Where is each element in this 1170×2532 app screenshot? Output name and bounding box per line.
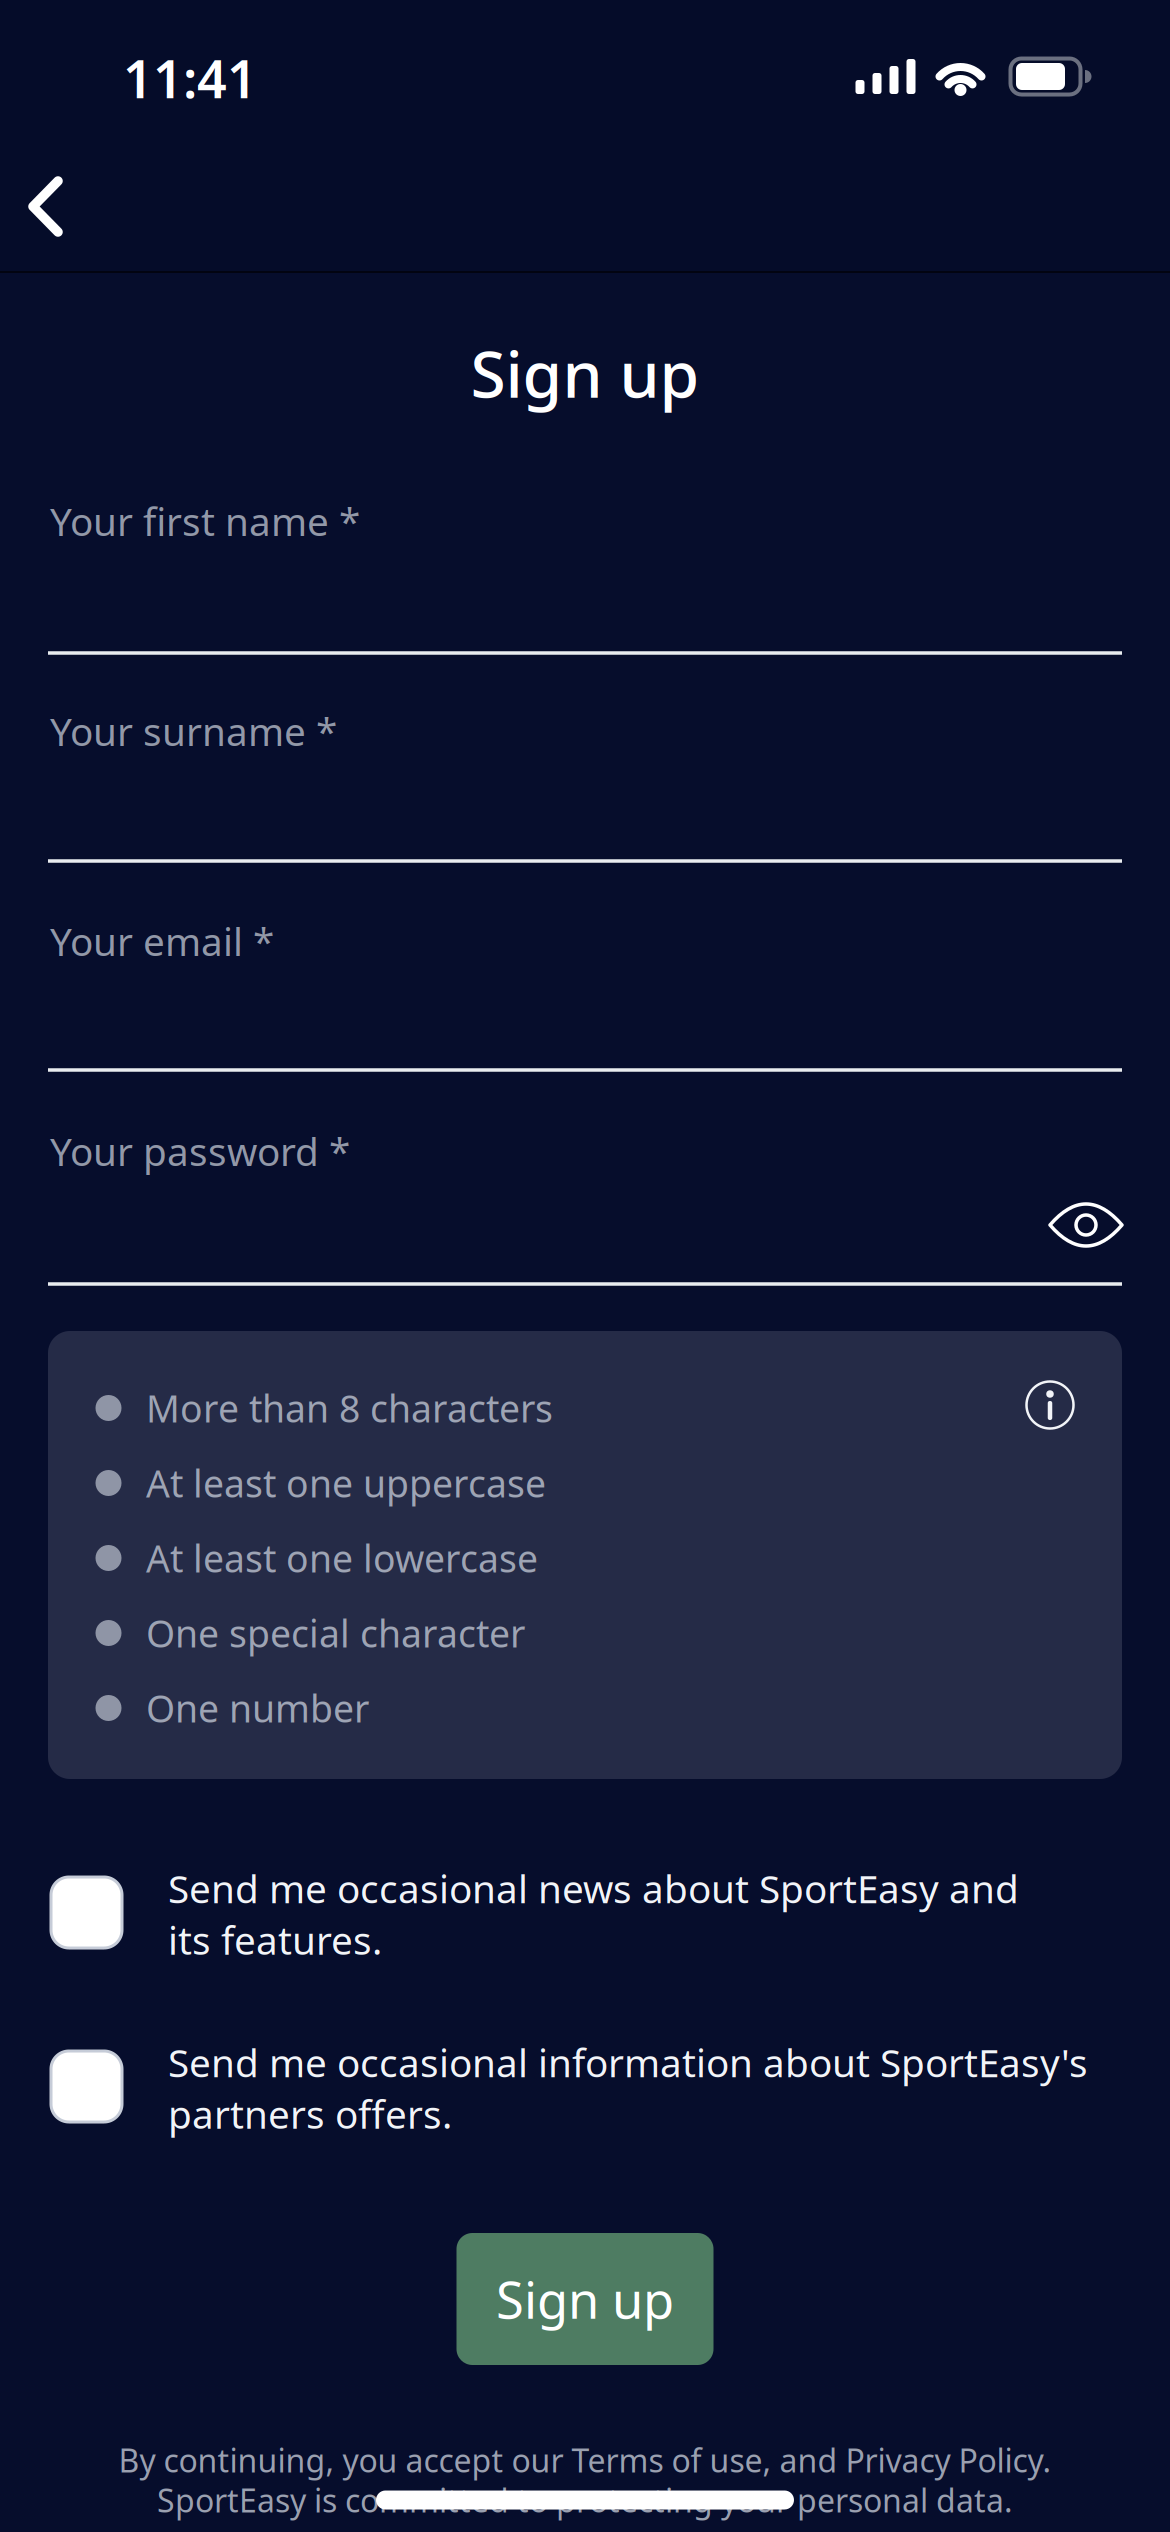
staticText: Your password *	[50, 1125, 350, 1177]
button[interactable]	[51, 2051, 122, 2122]
staticText: More than 8 characters	[146, 1383, 553, 1433]
button[interactable]	[51, 1877, 122, 1948]
button[interactable]	[48, 499, 1122, 655]
button[interactable]: By continuing, you accept our Terms of u…	[118, 2439, 1051, 2481]
button[interactable]	[0, 0, 1170, 2532]
button[interactable]	[48, 918, 1122, 1074]
staticText: One number	[146, 1683, 369, 1733]
staticText: Send me occasional information about Spo…	[168, 2037, 1088, 2139]
staticText: SportEasy is committed to protecting you…	[157, 2479, 1013, 2521]
staticText: Send me occasional news about SportEasy …	[168, 1863, 1019, 1965]
staticText: Your first name *	[50, 495, 360, 547]
staticText: At least one uppercase	[146, 1458, 546, 1508]
staticText: One special character	[146, 1608, 525, 1658]
staticText: Sign up	[496, 2265, 674, 2333]
button[interactable]	[0, 0, 1170, 2532]
staticText: Your surname *	[50, 705, 337, 757]
button[interactable]: Sign up	[456, 2233, 713, 2365]
staticText: At least one lowercase	[146, 1533, 538, 1583]
staticText: Sign up	[470, 330, 699, 415]
staticText: By continuing, you accept our Terms of u…	[118, 2439, 1051, 2481]
button[interactable]	[48, 1130, 1122, 1286]
staticText: Your email *	[50, 915, 274, 967]
button[interactable]	[0, 0, 1170, 2532]
staticText: 11:41	[123, 43, 257, 113]
button[interactable]	[48, 708, 1122, 864]
